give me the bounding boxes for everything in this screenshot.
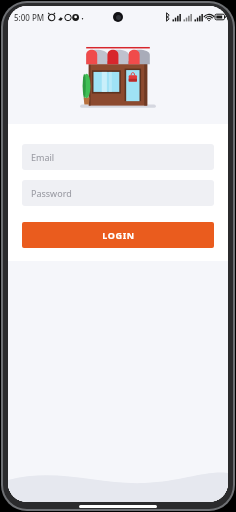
button[interactable]: Email (22, 144, 214, 170)
staticText: LOGIN (102, 229, 135, 241)
staticText: 5:00 PM (14, 12, 45, 23)
button[interactable]: Password (22, 180, 214, 206)
staticText: Email (31, 151, 55, 163)
button[interactable]: LOGIN (22, 222, 214, 248)
staticText: Password (31, 187, 72, 199)
